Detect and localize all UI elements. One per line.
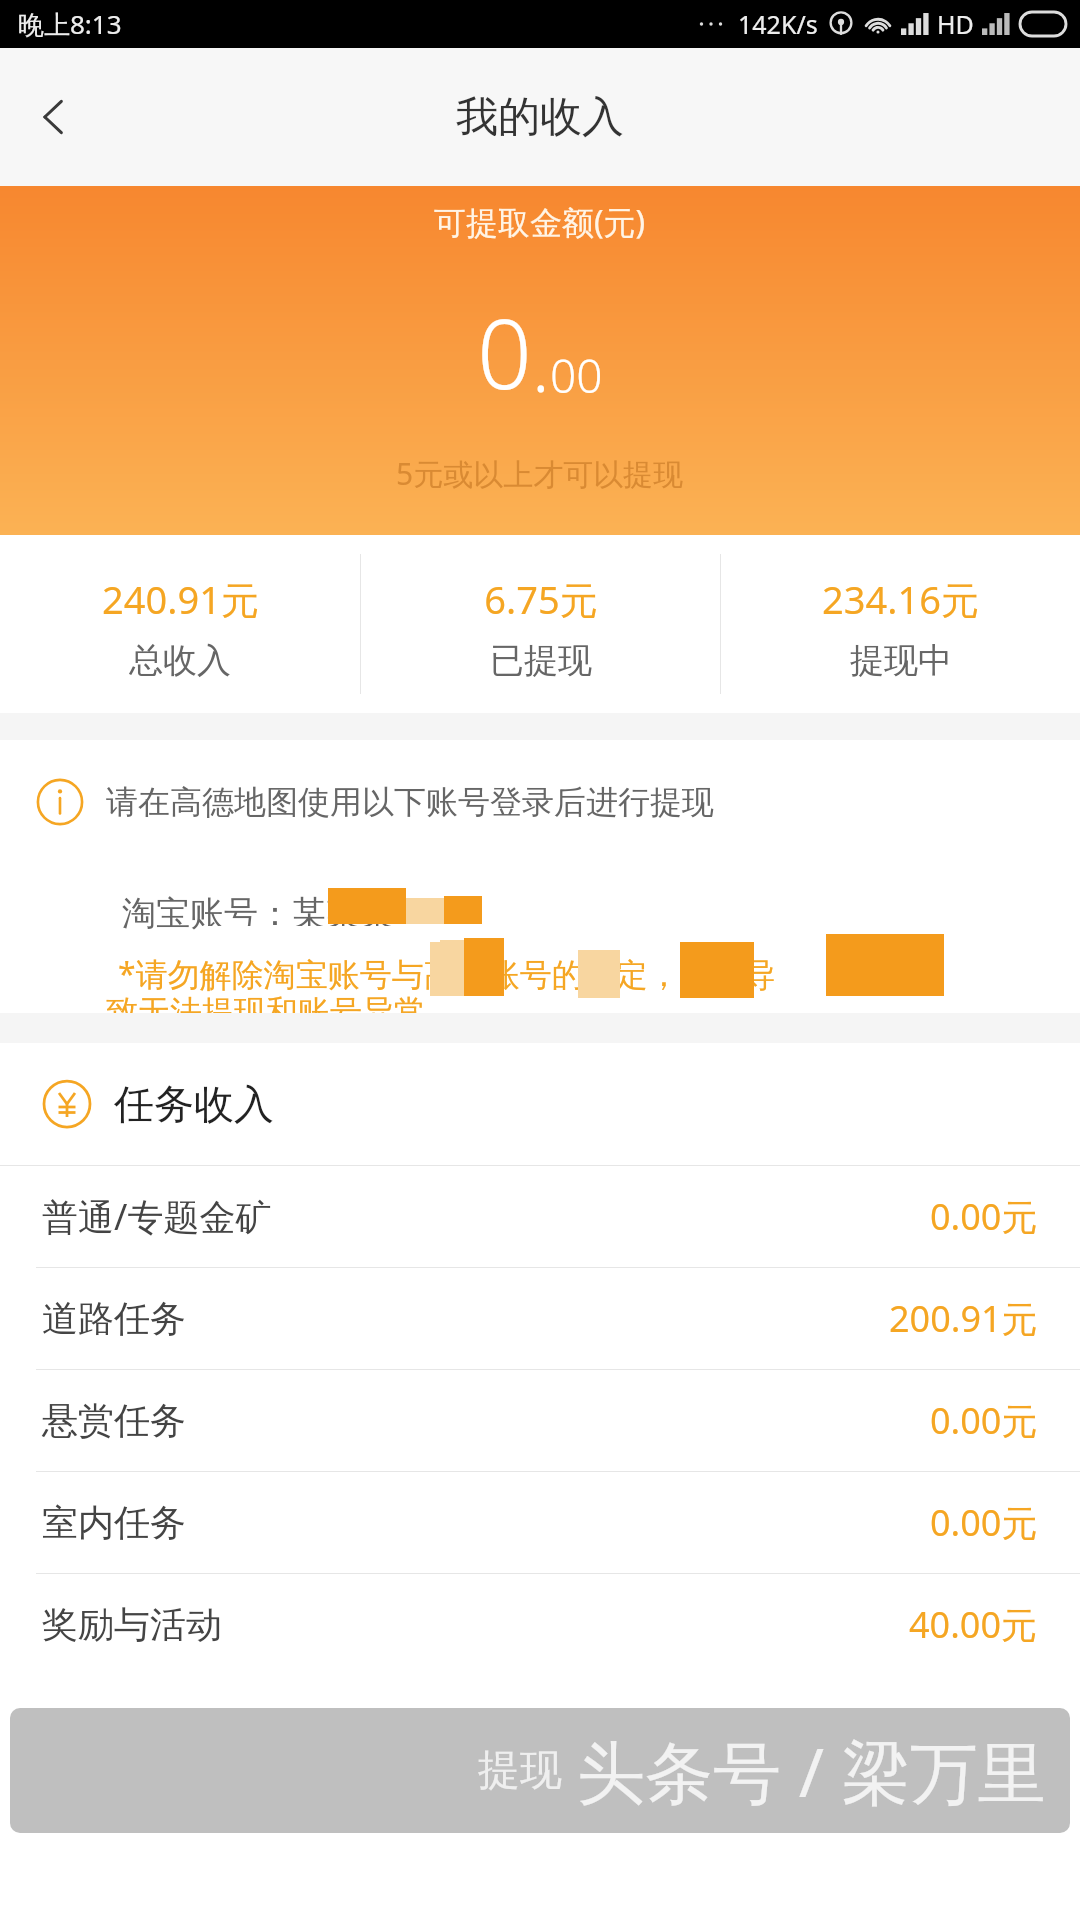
button[interactable]: 234.16元	[721, 535, 1080, 682]
staticText: 已提现	[490, 639, 592, 682]
button[interactable]: 奖励与活动	[0, 1574, 1080, 1675]
staticText: 头条号 / 梁万里	[577, 1724, 1046, 1817]
staticText: 5元或以上才可以提现	[396, 453, 684, 494]
staticText: *请勿解除淘宝账号与高德账号的绑定，以免导	[118, 952, 776, 996]
staticText: 40.00元	[909, 1600, 1038, 1649]
button[interactable]: 悬赏任务	[0, 1370, 1080, 1472]
button[interactable]: 室内任务	[0, 1472, 1080, 1574]
staticText: 0.00元	[930, 1192, 1038, 1241]
staticText: 我的收入	[456, 91, 624, 144]
staticText: 00	[550, 344, 603, 407]
staticText: 道路任务	[42, 1296, 186, 1341]
button[interactable]: Back	[0, 63, 108, 171]
staticText: 普通/专题金矿	[42, 1192, 272, 1241]
button[interactable]: 提现	[10, 1708, 1070, 1833]
staticText: 0.00元	[930, 1396, 1038, 1445]
staticText: 240.91元	[102, 573, 259, 625]
staticText: 可提取金额(元)	[434, 200, 646, 244]
staticText: 提现	[478, 1744, 562, 1797]
staticText: 234.16元	[822, 573, 979, 625]
staticText: 任务收入	[114, 1079, 274, 1129]
staticText: 致无法提现和账号异常	[106, 992, 426, 1032]
staticText: 淘宝账号：某某某	[122, 892, 394, 935]
staticText: 提现中	[850, 639, 952, 682]
staticText: HD	[937, 7, 974, 41]
button[interactable]: 6.75元	[361, 535, 720, 682]
staticText: 142K/s	[738, 7, 818, 41]
button[interactable]: 道路任务	[0, 1268, 1080, 1370]
button[interactable]: 普通/专题金矿	[0, 1166, 1080, 1268]
staticText: 悬赏任务	[42, 1398, 186, 1443]
staticText: .	[532, 315, 550, 413]
staticText: 6.75元	[484, 573, 598, 625]
staticText: 晚上8:13	[18, 6, 122, 42]
staticText: 室内任务	[42, 1500, 186, 1545]
staticText: 200.91元	[889, 1294, 1038, 1343]
button[interactable]: 240.91元	[0, 535, 360, 682]
staticText: 奖励与活动	[42, 1602, 222, 1647]
staticText: 0.00元	[930, 1498, 1038, 1547]
staticText: 请在高德地图使用以下账号登录后进行提现	[106, 782, 714, 822]
staticText: 总收入	[129, 639, 231, 682]
button[interactable]: 任务收入	[0, 1043, 1080, 1165]
staticText: 0	[477, 286, 532, 417]
